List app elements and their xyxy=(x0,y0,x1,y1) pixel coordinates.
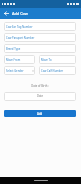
staticText: Add Cow xyxy=(12,11,28,16)
button[interactable]: Select Gender xyxy=(4,66,35,75)
button[interactable]: Cow Ear Tag Number xyxy=(4,22,76,31)
button[interactable]: Add xyxy=(4,110,76,117)
button[interactable]: Breed Type xyxy=(4,44,76,53)
staticText: Cow Ear Tag Number xyxy=(6,25,33,29)
staticText: Cow Calf Number xyxy=(41,69,64,73)
staticText: Date xyxy=(37,94,43,98)
staticText: Move To xyxy=(41,58,52,62)
staticText: Date of Birth : xyxy=(4,84,76,88)
staticText: Cow Passport Number xyxy=(6,36,35,40)
button[interactable]: Back xyxy=(0,8,12,19)
button[interactable]: Move To xyxy=(39,55,76,64)
button[interactable]: Date xyxy=(4,92,76,101)
staticText: Move From xyxy=(6,58,21,62)
button[interactable]: Move From xyxy=(4,55,35,64)
staticText: Select Gender xyxy=(6,69,24,73)
button[interactable]: Cow Passport Number xyxy=(4,33,76,42)
button[interactable]: Cow Calf Number xyxy=(39,66,76,75)
staticText: Add xyxy=(37,112,43,116)
staticText: Breed Type xyxy=(6,47,21,51)
